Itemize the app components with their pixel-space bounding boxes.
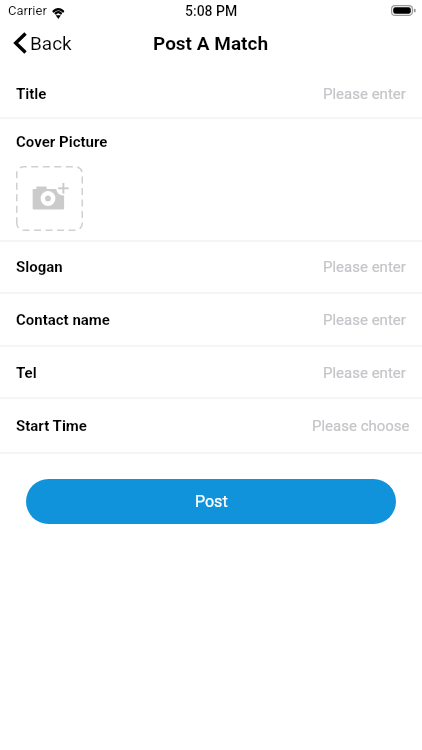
button[interactable]: Contact name xyxy=(0,294,422,347)
button[interactable]: Post xyxy=(26,479,396,524)
staticText: Please enter xyxy=(323,258,406,276)
staticText: Cover Picture xyxy=(16,133,108,151)
button[interactable]: Add cover picture xyxy=(16,166,83,231)
button[interactable]: Back xyxy=(0,27,82,59)
button[interactable]: Start Time xyxy=(0,399,422,454)
staticText: Back xyxy=(30,32,72,54)
staticText: Please enter xyxy=(323,85,406,103)
staticText: Start Time xyxy=(16,417,87,435)
button[interactable]: Title xyxy=(0,64,422,119)
staticText: Please choose xyxy=(312,417,410,435)
button[interactable]: Slogan xyxy=(0,242,422,294)
staticText: Slogan xyxy=(16,258,63,276)
staticText: Title xyxy=(16,85,47,103)
staticText: 5:08 PM xyxy=(185,3,238,19)
button[interactable]: Tel xyxy=(0,347,422,399)
staticText: Please enter xyxy=(323,311,406,329)
staticText: Please enter xyxy=(323,364,406,382)
staticText: Post A Match xyxy=(153,32,269,54)
staticText: Carrier xyxy=(8,3,47,18)
staticText: Tel xyxy=(16,364,37,382)
staticText: Contact name xyxy=(16,311,110,329)
staticText: Post xyxy=(195,492,228,511)
